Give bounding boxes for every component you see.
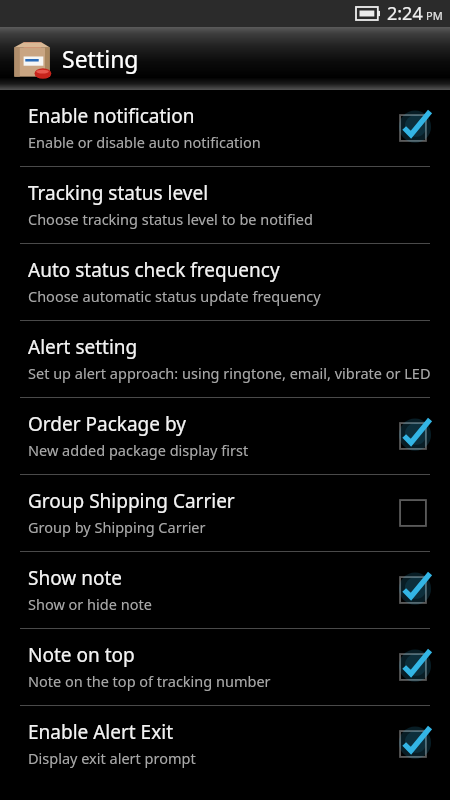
button[interactable]: Group Shipping Carrier bbox=[0, 475, 450, 551]
staticText: Group by Shipping Carrier bbox=[28, 517, 206, 537]
button[interactable]: Show note bbox=[0, 552, 450, 628]
staticText: Choose tracking status level to be notif… bbox=[28, 209, 313, 229]
staticText: 2:24 bbox=[387, 1, 423, 26]
staticText: Enable or disable auto notification bbox=[28, 132, 261, 152]
staticText: Auto status check frequency bbox=[28, 257, 280, 283]
staticText: Setting bbox=[62, 43, 139, 74]
staticText: Enable notification bbox=[28, 103, 195, 129]
button[interactable]: Enabled bbox=[394, 648, 432, 686]
button[interactable]: Disabled bbox=[394, 494, 432, 532]
staticText: New added package display first bbox=[28, 440, 249, 460]
staticText: Order Package by bbox=[28, 411, 186, 437]
staticText: Note on top bbox=[28, 642, 135, 668]
button[interactable]: Enabled bbox=[394, 417, 432, 455]
staticText: Set up alert approach: using ringtone, e… bbox=[28, 363, 431, 383]
staticText: Alert setting bbox=[28, 334, 138, 360]
staticText: PM bbox=[426, 8, 443, 23]
button[interactable]: Tracking status level bbox=[0, 167, 450, 243]
button[interactable]: Enabled bbox=[394, 571, 432, 609]
button[interactable]: Note on top bbox=[0, 629, 450, 705]
button[interactable]: Auto status check frequency bbox=[0, 244, 450, 320]
staticText: Group Shipping Carrier bbox=[28, 488, 235, 514]
button[interactable]: Enable notification bbox=[0, 90, 450, 166]
staticText: Choose automatic status update frequency bbox=[28, 286, 321, 306]
button[interactable]: Alert setting bbox=[0, 321, 450, 397]
button[interactable]: Enabled bbox=[394, 109, 432, 147]
staticText: Show note bbox=[28, 565, 122, 591]
staticText: Enable Alert Exit bbox=[28, 719, 173, 745]
staticText: Show or hide note bbox=[28, 594, 152, 614]
button[interactable]: Enable Alert Exit bbox=[0, 706, 450, 782]
button[interactable]: Order Package by bbox=[0, 398, 450, 474]
staticText: Tracking status level bbox=[28, 180, 209, 206]
staticText: Display exit alert prompt bbox=[28, 748, 196, 768]
staticText: Note on the top of tracking number bbox=[28, 671, 271, 691]
button[interactable]: Enabled bbox=[394, 725, 432, 763]
